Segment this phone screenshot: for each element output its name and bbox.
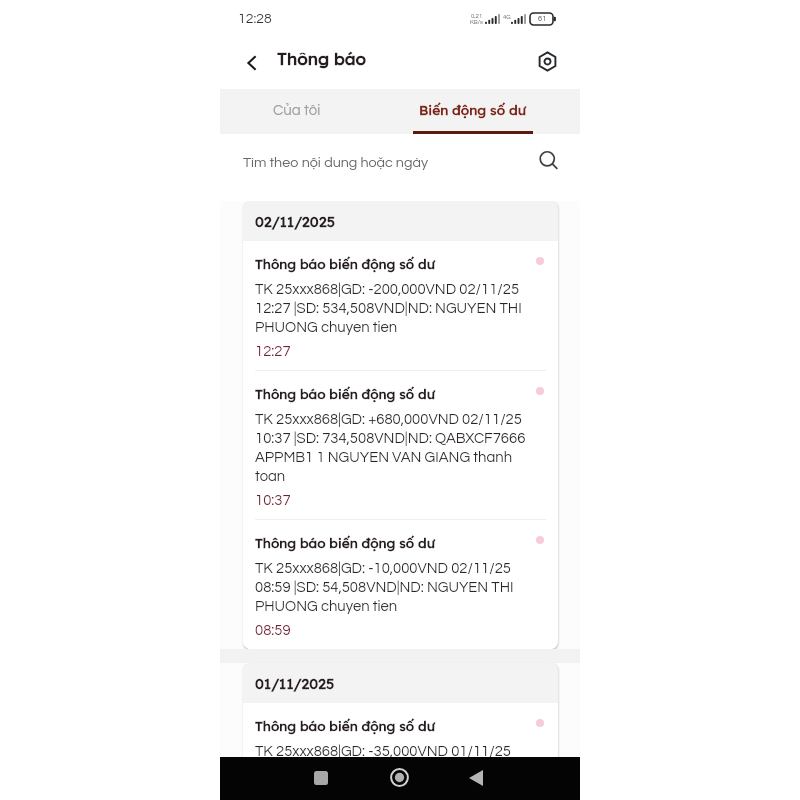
staticText: Thông báo biến động số dư <box>255 534 435 551</box>
button[interactable]: Search <box>535 147 563 175</box>
staticText: Tìm theo nội dung hoặc ngày <box>243 155 429 170</box>
staticText: Của tôi <box>273 103 321 118</box>
button[interactable]: Của tôi <box>242 89 352 134</box>
staticText: 01/11/2025 <box>255 674 335 692</box>
staticText: 61 <box>538 15 547 23</box>
staticText: 0,21 <box>471 13 483 19</box>
button[interactable]: Thông báo biến động số dư <box>243 520 558 649</box>
staticText: Thông báo biến động số dư <box>255 717 435 734</box>
button[interactable]: Thông báo biến động số dư <box>243 241 558 370</box>
button[interactable]: Biến động số dư <box>413 89 533 134</box>
staticText: TK 25xxx868|GD: +680,000VND 02/11/25 10:… <box>255 412 535 484</box>
staticText: 02/11/2025 <box>255 212 335 230</box>
staticText: 12:27 <box>255 344 291 359</box>
staticText: TK 25xxx868|GD: -200,000VND 02/11/25 12:… <box>255 282 535 335</box>
staticText: Thông báo <box>277 48 367 70</box>
staticText: 12:28 <box>238 12 272 26</box>
staticText: TK 25xxx868|GD: -10,000VND 02/11/25 08:5… <box>255 561 535 614</box>
button[interactable]: Back <box>229 40 275 86</box>
button[interactable]: Home <box>377 756 421 799</box>
staticText: Thông báo biến động số dư <box>255 385 435 402</box>
staticText: Thông báo biến động số dư <box>255 255 435 272</box>
staticText: 10:37 <box>255 493 291 508</box>
button[interactable]: Back <box>454 756 498 799</box>
button[interactable]: Recent apps <box>299 756 343 799</box>
staticText: KB/s <box>470 19 483 25</box>
staticText: Biến động số dư <box>419 101 527 118</box>
button[interactable]: Tìm theo nội dung hoặc ngày <box>220 134 580 201</box>
button[interactable]: Settings <box>524 38 570 84</box>
staticText: TK 25xxx868|GD: -35,000VND 01/11/25 21:0… <box>255 744 535 757</box>
button[interactable]: Thông báo biến động số dư <box>243 703 558 757</box>
staticText: 4G <box>503 14 511 20</box>
staticText: 08:59 <box>255 623 291 638</box>
button[interactable]: Thông báo biến động số dư <box>243 371 558 519</box>
